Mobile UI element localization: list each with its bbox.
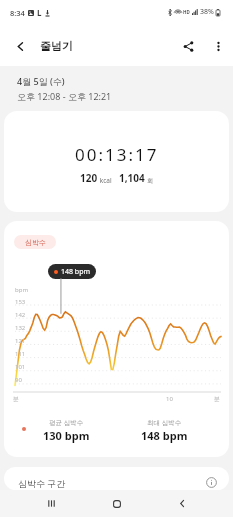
staticText: HD — [183, 9, 190, 15]
button[interactable]: 심박수 — [14, 235, 56, 249]
staticText: 132 — [15, 324, 26, 332]
staticText: 90 — [15, 376, 22, 384]
button[interactable]: Back — [168, 490, 196, 517]
staticText: 분 — [13, 395, 19, 403]
button[interactable]: 심박수 구간 — [4, 467, 229, 490]
other: Info — [206, 477, 217, 488]
staticText: 38% — [200, 7, 214, 17]
staticText: 심박수 구간 — [18, 477, 66, 489]
staticText: 111 — [15, 350, 26, 358]
staticText: 1,104 — [119, 171, 145, 185]
staticText: 오후 12:08 - 오후 12:21 — [17, 90, 112, 102]
staticText: 분 — [214, 395, 220, 403]
staticText: 142 — [15, 311, 26, 319]
staticText: 153 — [15, 298, 26, 306]
button[interactable]: Back — [0, 26, 40, 66]
staticText: 120 — [80, 171, 98, 185]
staticText: 101 — [15, 363, 26, 371]
button[interactable]: Recent apps — [37, 490, 65, 517]
staticText: 121 — [15, 337, 26, 345]
staticText: 130 bpm — [43, 428, 90, 443]
staticText: 최대 심박수 — [147, 418, 182, 427]
staticText: 8:34 — [10, 8, 25, 18]
staticText: 00:13:17 — [75, 143, 159, 166]
staticText: 평균 심박수 — [49, 418, 84, 427]
staticText: 줄넘기 — [40, 39, 73, 53]
staticText: 심박수 — [25, 238, 46, 247]
staticText: bpm — [15, 286, 28, 294]
staticText: 148 bpm — [61, 267, 90, 277]
staticText: kcal — [98, 176, 112, 185]
staticText: 10 — [166, 395, 173, 403]
button[interactable]: Home — [103, 490, 131, 517]
button[interactable]: More options — [203, 31, 233, 61]
button[interactable]: Share — [173, 31, 203, 61]
staticText: 4월 5일 (수) — [17, 75, 65, 87]
staticText: L — [37, 7, 42, 18]
staticText: 회 — [145, 176, 154, 185]
staticText: 148 bpm — [141, 428, 188, 443]
